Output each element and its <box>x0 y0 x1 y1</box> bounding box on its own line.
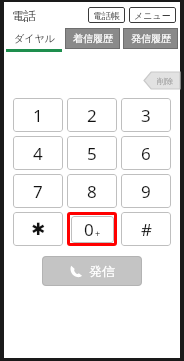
staticText: 2 <box>87 104 97 127</box>
button[interactable]: 9 <box>121 174 171 208</box>
staticText: + <box>95 227 101 239</box>
button[interactable]: メニュー <box>129 7 176 23</box>
button[interactable]: 発信履歴 <box>123 28 178 52</box>
button[interactable]: # <box>121 212 171 246</box>
staticText: 1 <box>33 104 43 127</box>
button[interactable]: ✱ <box>13 212 63 246</box>
button[interactable]: 4 <box>13 136 63 170</box>
button[interactable]: 0 <box>71 216 114 243</box>
staticText: メニュー <box>134 10 171 21</box>
staticText: 7 <box>33 180 43 203</box>
staticText: 0 <box>84 218 94 241</box>
button[interactable]: 削除 <box>144 72 180 89</box>
staticText: 電話 <box>12 8 36 23</box>
staticText: # <box>141 218 152 241</box>
button[interactable]: ダイヤル <box>6 28 62 52</box>
button[interactable]: 1 <box>13 98 63 132</box>
button[interactable]: 着信履歴 <box>65 28 120 52</box>
button[interactable]: 5 <box>67 136 117 170</box>
staticText: 8 <box>87 180 97 203</box>
staticText: 着信履歴 <box>73 32 113 45</box>
staticText: 発信履歴 <box>131 32 171 45</box>
staticText: ダイヤル <box>14 32 55 45</box>
button[interactable]: 8 <box>67 174 117 208</box>
staticText: 3 <box>141 104 151 127</box>
button[interactable]: 7 <box>13 174 63 208</box>
staticText: 6 <box>141 142 151 165</box>
staticText: 削除 <box>157 76 173 86</box>
staticText: 発信 <box>89 263 115 279</box>
staticText: 4 <box>33 142 43 165</box>
button[interactable]: 電話帳 <box>88 7 125 23</box>
staticText: 5 <box>87 142 97 165</box>
button[interactable]: 6 <box>121 136 171 170</box>
staticText: ✱ <box>31 219 46 239</box>
staticText: 9 <box>141 180 151 203</box>
staticText: 電話帳 <box>93 10 120 21</box>
button[interactable]: 3 <box>121 98 171 132</box>
button[interactable]: 2 <box>67 98 117 132</box>
button[interactable]: 発信 <box>42 256 142 286</box>
